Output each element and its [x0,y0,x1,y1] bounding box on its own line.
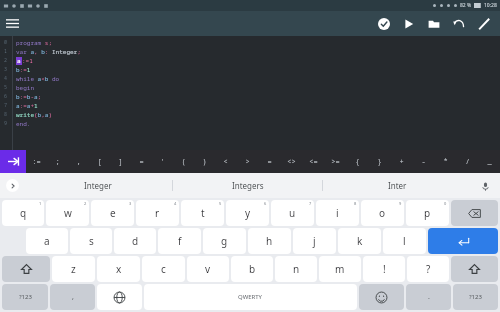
button[interactable]: ( [173,150,194,173]
button[interactable]: Edit [471,11,496,36]
button[interactable]: d [114,228,156,254]
button[interactable]: s [70,228,112,254]
staticText: write(b,a) [16,111,53,119]
staticText: p [424,206,431,220]
button[interactable]: Shift [2,256,50,282]
button[interactable]: More suggestions [6,179,19,192]
button[interactable]: [ [89,150,110,173]
button[interactable]: j [293,228,336,254]
button[interactable]: < [215,150,236,173]
button[interactable]: * [434,150,456,173]
staticText: b [249,262,256,276]
button[interactable]: p [406,200,449,226]
button[interactable]: ? [407,256,449,282]
button[interactable]: _ [478,150,500,173]
button[interactable]: Change language [97,284,142,310]
staticText: <= [309,157,318,167]
button[interactable]: i [316,200,359,226]
button[interactable]: / [456,150,478,173]
button[interactable]: = [258,150,280,173]
button[interactable]: } [368,150,390,173]
staticText: ?123 [19,293,32,301]
staticText: :=1 [22,57,33,65]
button[interactable]: a [26,228,68,254]
button[interactable]: <= [302,150,324,173]
button[interactable]: f [158,228,201,254]
staticText: = [267,157,272,167]
button[interactable]: o [361,200,404,226]
button[interactable]: n [275,256,317,282]
button[interactable]: v [187,256,229,282]
button[interactable]: { [346,150,368,173]
button[interactable]: t [181,200,224,226]
button[interactable]: QWERTY [144,284,357,310]
staticText: 8 [4,111,8,118]
button[interactable]: m [319,256,361,282]
staticText: , [72,292,74,302]
button[interactable]: l [383,228,426,254]
button[interactable]: ?123 [453,284,498,310]
button[interactable]: ; [47,150,68,173]
button[interactable]: h [248,228,291,254]
button[interactable]: Shift [451,256,498,282]
staticText: 7 [309,201,312,206]
button[interactable]: Inter [323,173,472,198]
button[interactable]: ! [363,256,405,282]
staticText: 9 [399,201,402,206]
staticText: { [355,157,360,167]
button[interactable]: Integer [24,173,172,198]
button[interactable]: > [236,150,258,173]
button[interactable]: ' [152,150,173,173]
button[interactable]: z [52,256,95,282]
staticText: b:=b-a; [16,93,42,101]
staticText: 5 [4,84,8,91]
button[interactable]: Backspace [451,200,498,226]
staticText: + [399,157,404,167]
staticText: j [313,234,316,248]
staticText: _ [487,157,492,167]
button[interactable]: >= [324,150,346,173]
button[interactable]: <> [280,150,302,173]
button[interactable]: Menu [0,11,25,36]
button[interactable]: u [271,200,314,226]
button[interactable]: Voice input [478,179,492,193]
button[interactable]: Compile [371,11,396,36]
button[interactable]: Emoji [359,284,404,310]
button[interactable]: - [412,150,434,173]
button[interactable]: b [231,256,273,282]
button[interactable]: r [136,200,179,226]
button[interactable]: , [50,284,95,310]
staticText: 2 [4,57,8,64]
staticText: b:=1 [16,66,31,74]
staticText: g [221,234,228,248]
button[interactable]: Undo [446,11,471,36]
button[interactable]: ] [110,150,131,173]
button[interactable]: x [97,256,140,282]
staticText: 5 [219,201,222,206]
staticText: ' [160,157,165,167]
button[interactable]: := [26,150,47,173]
button[interactable]: q [2,200,44,226]
button[interactable]: w [46,200,89,226]
button[interactable]: Enter [428,228,498,254]
button[interactable]: , [68,150,89,173]
button[interactable]: c [142,256,185,282]
staticText: z [71,262,76,276]
button[interactable]: . [406,284,451,310]
button[interactable]: + [390,150,412,173]
button[interactable]: k [338,228,381,254]
button[interactable]: = [131,150,152,173]
button[interactable]: Tab [0,150,26,173]
staticText: 0 [4,39,8,46]
button[interactable]: y [226,200,269,226]
button[interactable]: ) [194,150,215,173]
staticText: k [357,234,363,248]
button[interactable]: Open folder [421,11,446,36]
staticText: l [403,234,406,248]
button[interactable]: Run [396,11,421,36]
button[interactable]: ?123 [2,284,48,310]
button[interactable]: Integers [173,173,322,198]
button[interactable]: e [91,200,134,226]
button[interactable]: g [203,228,246,254]
staticText: t [201,206,205,220]
